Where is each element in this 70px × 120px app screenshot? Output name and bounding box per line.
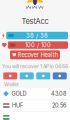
button[interactable]: Level [53, 72, 67, 79]
staticText: Recover Health [17, 51, 57, 58]
button[interactable]: HUF [0, 100, 70, 112]
staticText: TestAcc [21, 17, 48, 26]
staticText: 100 / 100 [25, 41, 51, 49]
button[interactable]: GOLD [0, 88, 70, 100]
button[interactable]: Strength [3, 72, 17, 79]
staticText: HUF [12, 102, 23, 109]
staticText: 38 / 38 [26, 32, 48, 39]
button[interactable]: Rank [36, 72, 50, 79]
staticText: Wallet [4, 81, 19, 87]
staticText: You will recover 1 AP in 04:56 [2, 63, 68, 69]
button[interactable]: Recover Health [10, 50, 60, 59]
staticText: GOLD [11, 90, 26, 97]
staticText: 43.08 [51, 90, 66, 97]
button[interactable]: Experience [20, 72, 34, 79]
staticText: 20.56 [52, 102, 66, 109]
button[interactable] [0, 112, 70, 120]
